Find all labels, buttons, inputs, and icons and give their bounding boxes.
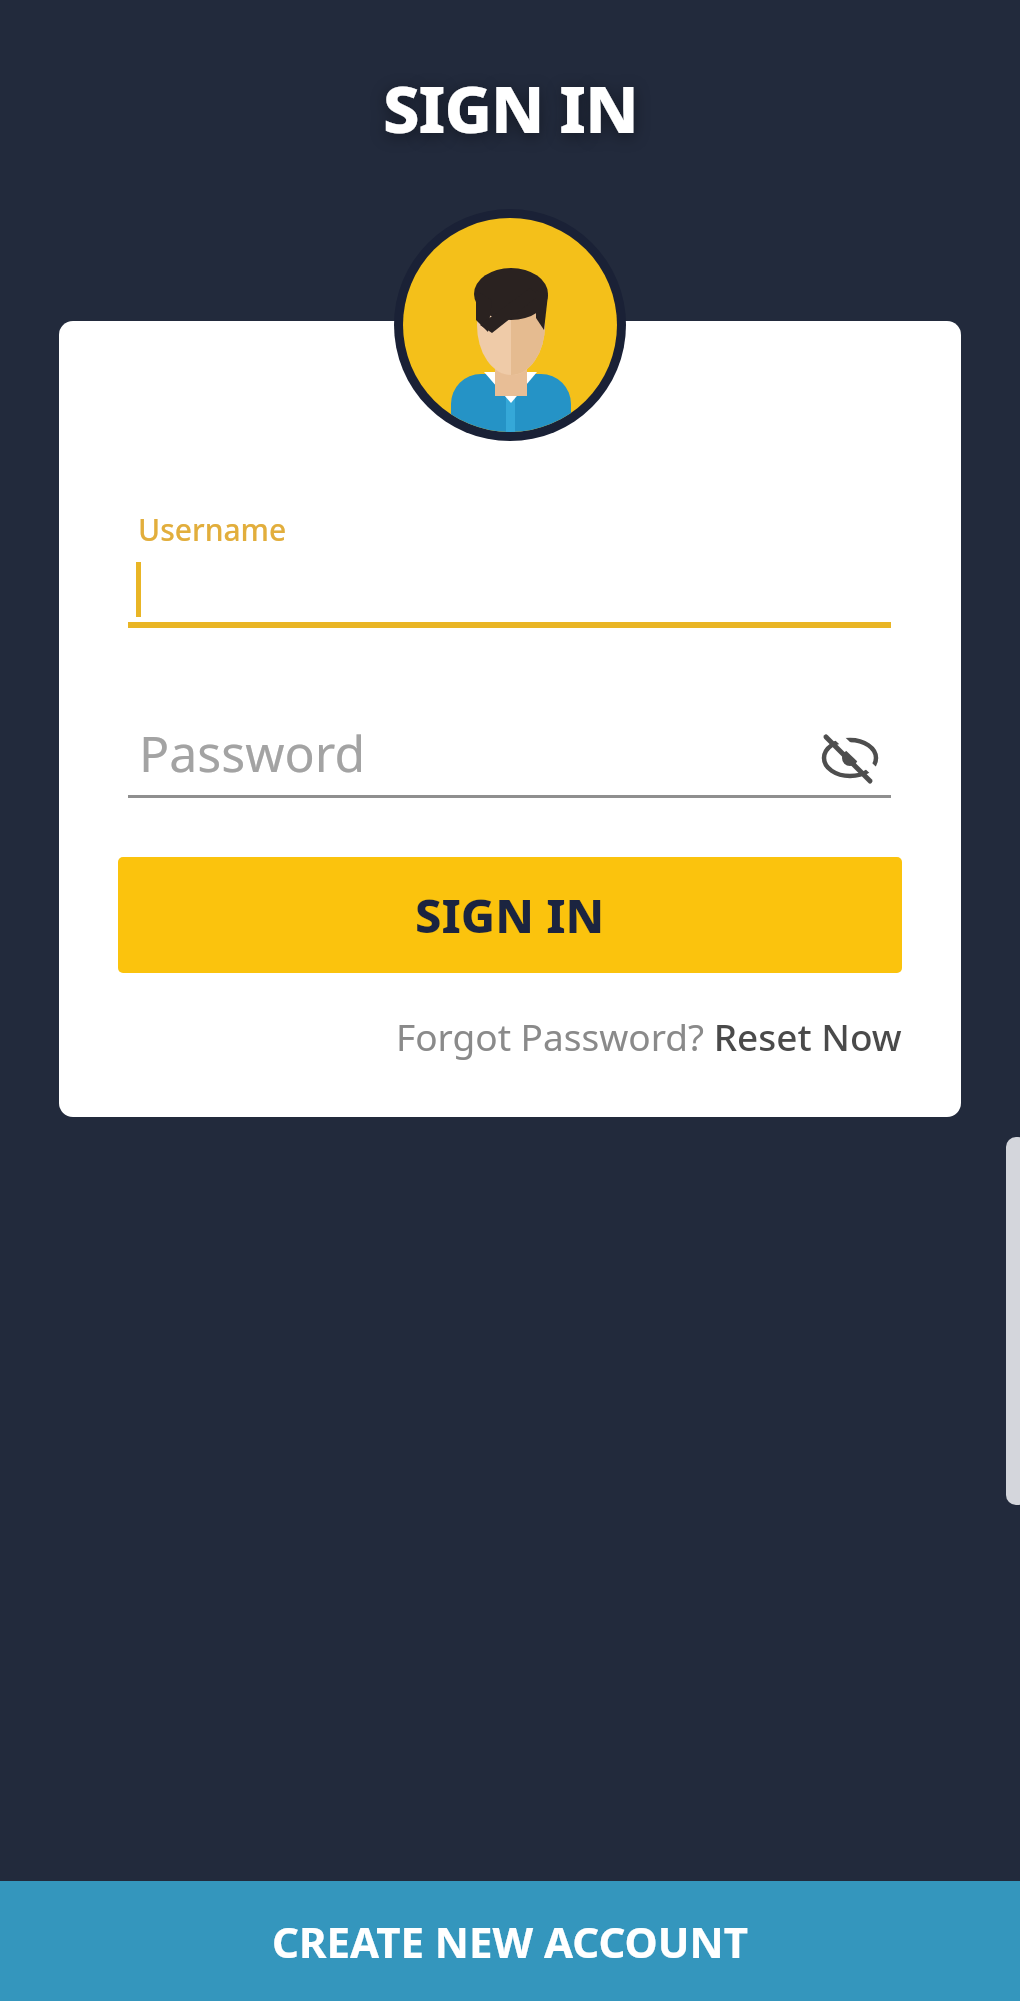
button[interactable] (822, 735, 878, 781)
staticText: Password (139, 719, 366, 787)
staticText: CREATE NEW ACCOUNT (272, 1913, 748, 1970)
staticText: Username (138, 509, 287, 550)
staticText: SIGN IN (383, 64, 638, 153)
staticText: SIGN IN (415, 883, 605, 947)
button[interactable]: SIGN IN (118, 857, 902, 973)
button[interactable]: Forgot Password? Reset Now (396, 1011, 902, 1061)
button[interactable]: CREATE NEW ACCOUNT (0, 1881, 1020, 2001)
